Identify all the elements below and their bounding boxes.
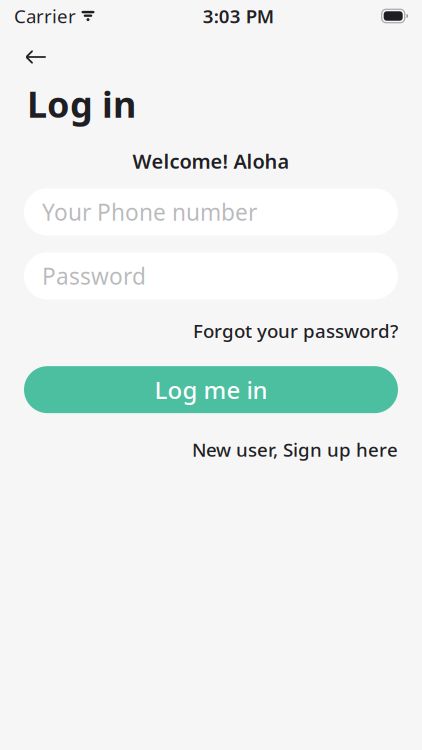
button[interactable]: Log me in <box>24 366 398 413</box>
staticText: Welcome! Aloha <box>132 148 289 174</box>
staticText: Log me in <box>154 374 267 406</box>
staticText: Carrier <box>14 4 76 28</box>
staticText: New user, Sign up here <box>192 437 398 462</box>
staticText: Password <box>42 261 146 291</box>
staticText: Forgot your password? <box>193 318 398 343</box>
staticText: Log in <box>27 80 136 128</box>
button[interactable]: Forgot your password? <box>193 318 398 343</box>
staticText: Your Phone number <box>42 197 257 227</box>
button[interactable]: Back <box>14 40 58 74</box>
button[interactable]: New user, Sign up here <box>192 437 398 462</box>
staticText: 3:03 PM <box>203 4 274 28</box>
